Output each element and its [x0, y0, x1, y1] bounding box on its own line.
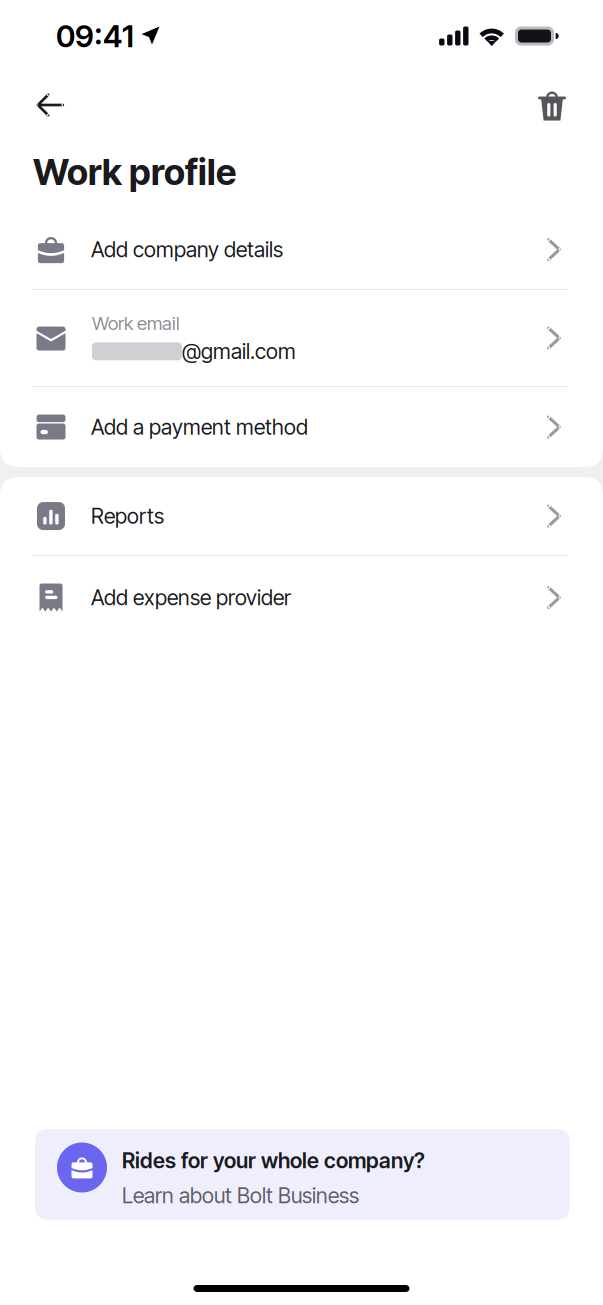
staticText: Reports — [91, 503, 164, 529]
button[interactable]: Delete work profile — [520, 82, 603, 128]
button[interactable]: Reports — [0, 477, 603, 555]
staticText: 09:41 — [56, 17, 134, 54]
button[interactable]: Add company details — [0, 210, 603, 289]
staticText: Learn about Bolt Business — [122, 1182, 359, 1208]
staticText: Work email — [92, 312, 180, 334]
staticText: Add a payment method — [91, 414, 308, 440]
staticText: Rides for your whole company? — [122, 1148, 425, 1173]
staticText: @gmail.com — [182, 338, 296, 364]
button[interactable]: Rides for your whole company? — [35, 1129, 570, 1220]
staticText: Add expense provider — [91, 585, 291, 610]
staticText: Work profile — [33, 150, 236, 194]
button[interactable]: Work email — [0, 290, 603, 386]
staticText: Add company details — [91, 237, 283, 262]
button[interactable]: Add a payment method — [0, 387, 603, 467]
button[interactable]: Add expense provider — [0, 556, 603, 639]
button[interactable]: Back — [0, 82, 82, 128]
